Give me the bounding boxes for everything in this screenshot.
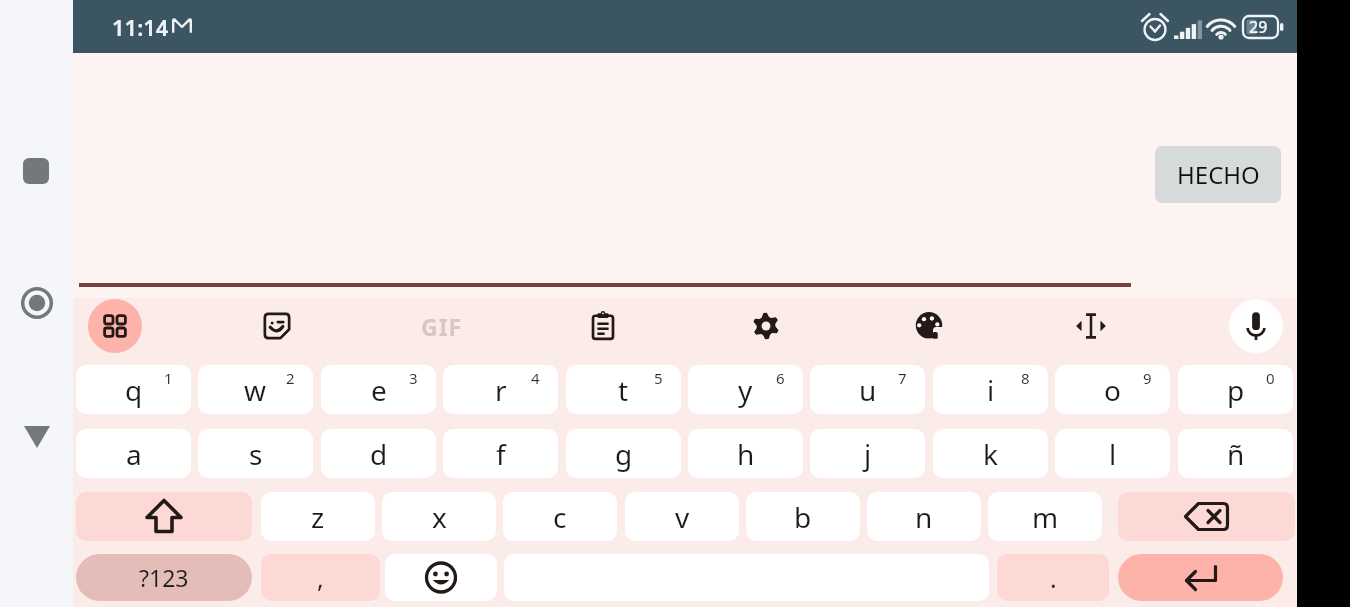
staticText: HECHO — [1177, 158, 1260, 191]
button[interactable]: Text editing — [1064, 299, 1118, 353]
staticText: y — [738, 371, 753, 409]
button[interactable]: Settings — [739, 299, 793, 353]
button[interactable]: Enter — [1118, 554, 1283, 601]
button[interactable]: Switch input — [88, 299, 142, 353]
staticText: 29 — [1249, 16, 1268, 38]
button[interactable]: ñ — [1178, 429, 1293, 478]
button[interactable]: i — [933, 365, 1048, 414]
staticText: 3 — [409, 368, 418, 388]
staticText: u — [859, 371, 877, 409]
staticText: 7 — [898, 368, 907, 388]
staticText: m — [1032, 498, 1059, 536]
staticText: q — [125, 371, 143, 409]
staticText: x — [432, 498, 447, 536]
staticText: d — [370, 435, 388, 473]
staticText: z — [311, 498, 325, 536]
staticText: 1 — [164, 368, 173, 388]
staticText: o — [1104, 371, 1121, 409]
button[interactable]: Shift — [76, 492, 252, 541]
staticText: c — [553, 498, 567, 536]
staticText: . — [1050, 561, 1057, 595]
button[interactable]: Emoji — [385, 554, 497, 601]
staticText: a — [126, 435, 142, 473]
button[interactable]: f — [443, 429, 558, 478]
staticText: 5 — [654, 368, 663, 388]
button[interactable]: t — [566, 365, 681, 414]
button[interactable]: p — [1178, 365, 1293, 414]
staticText: 8 — [1021, 368, 1030, 388]
button[interactable]: Backspace — [1118, 492, 1295, 541]
button[interactable]: Recents — [17, 152, 55, 190]
button[interactable]: Home — [14, 280, 60, 326]
staticText: , — [317, 561, 324, 595]
button[interactable]: Period — [997, 554, 1109, 601]
staticText: w — [244, 371, 267, 409]
staticText: j — [864, 435, 872, 473]
button[interactable]: Back — [14, 414, 60, 460]
button[interactable]: b — [746, 492, 860, 541]
staticText: 6 — [776, 368, 785, 388]
button[interactable]: n — [867, 492, 981, 541]
button[interactable]: y — [688, 365, 803, 414]
staticText: g — [615, 435, 633, 473]
staticText: 11:14 — [112, 12, 169, 42]
button[interactable]: Themes — [902, 299, 956, 353]
button[interactable]: v — [625, 492, 739, 541]
staticText: b — [794, 498, 812, 536]
staticText: s — [249, 435, 263, 473]
button[interactable]: r — [443, 365, 558, 414]
staticText: ?123 — [139, 562, 189, 593]
staticText: 4 — [531, 368, 540, 388]
staticText: n — [915, 498, 933, 536]
button[interactable]: z — [261, 492, 375, 541]
button[interactable]: GIF — [415, 299, 469, 353]
button[interactable]: x — [382, 492, 496, 541]
button[interactable]: ?123 — [76, 554, 252, 601]
button[interactable]: c — [503, 492, 617, 541]
button[interactable]: h — [688, 429, 803, 478]
button[interactable]: l — [1055, 429, 1170, 478]
staticText: 2 — [286, 368, 295, 388]
button[interactable]: Voice input — [1229, 299, 1283, 353]
staticText: t — [618, 371, 629, 409]
staticText: h — [737, 435, 755, 473]
button[interactable]: s — [198, 429, 313, 478]
staticText: p — [1227, 371, 1245, 409]
button[interactable]: m — [988, 492, 1102, 541]
button[interactable]: e — [321, 365, 436, 414]
button[interactable]: w — [198, 365, 313, 414]
button[interactable]: a — [76, 429, 191, 478]
staticText: ñ — [1227, 435, 1245, 473]
button[interactable]: Stickers — [250, 299, 304, 353]
staticText: 9 — [1143, 368, 1152, 388]
staticText: e — [371, 371, 387, 409]
button[interactable]: Clipboard — [576, 299, 630, 353]
button[interactable]: o — [1055, 365, 1170, 414]
button[interactable]: g — [566, 429, 681, 478]
staticText: v — [675, 498, 690, 536]
button[interactable]: u — [810, 365, 925, 414]
button[interactable]: d — [321, 429, 436, 478]
staticText: 0 — [1266, 368, 1275, 388]
staticText: r — [495, 371, 507, 409]
staticText: f — [496, 435, 506, 473]
staticText: k — [983, 435, 998, 473]
staticText: GIF — [421, 311, 463, 342]
button[interactable]: HECHO — [1155, 146, 1281, 203]
staticText: i — [987, 371, 995, 409]
staticText: l — [1109, 435, 1117, 473]
button[interactable]: j — [810, 429, 925, 478]
button[interactable]: Comma — [261, 554, 380, 601]
button[interactable]: q — [76, 365, 191, 414]
button[interactable]: k — [933, 429, 1048, 478]
